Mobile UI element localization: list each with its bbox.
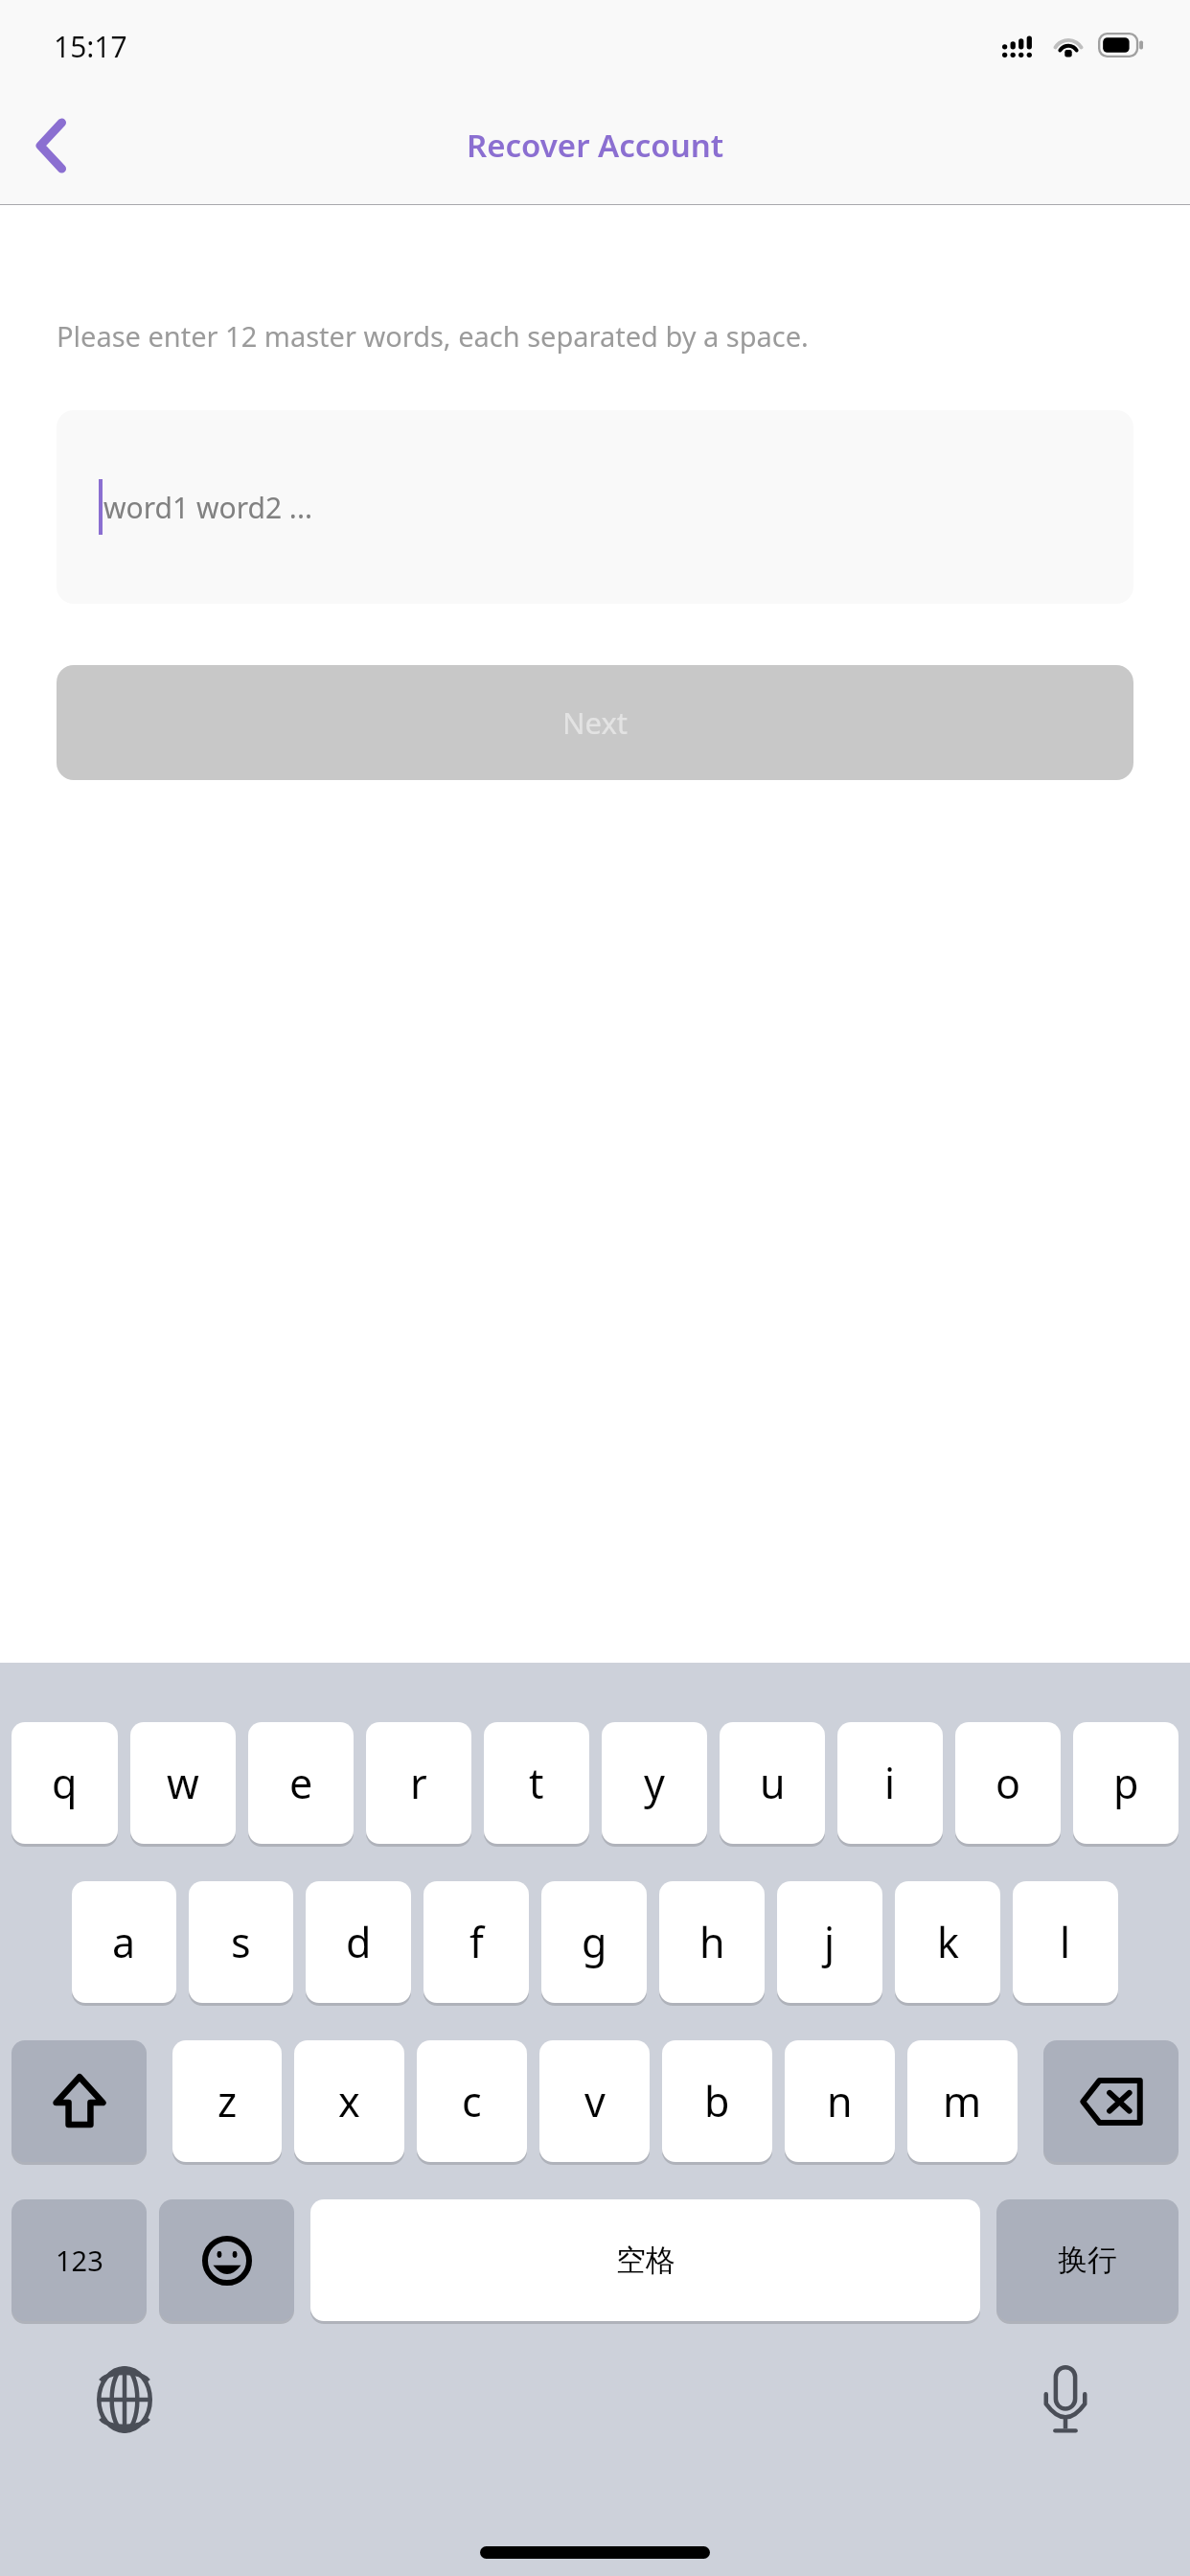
button[interactable] [11,2040,147,2162]
staticText: a [112,1914,136,1970]
staticText: h [699,1914,725,1970]
button[interactable]: 123 [11,2199,147,2321]
button[interactable]: b [662,2040,772,2162]
staticText: Next [562,702,629,743]
other: Shift [11,2040,147,2162]
staticText: c [462,2073,482,2129]
staticText: r [410,1755,427,1811]
button[interactable]: g [541,1881,647,2003]
button[interactable]: m [907,2040,1018,2162]
staticText: m [943,2073,982,2129]
button[interactable]: d [306,1881,411,2003]
staticText: f [469,1914,484,1970]
staticText: t [529,1755,544,1811]
button[interactable]: l [1013,1881,1118,2003]
button[interactable]: n [785,2040,895,2162]
button[interactable]: a [72,1881,176,2003]
button[interactable]: Dictation [1027,2361,1104,2438]
button[interactable]: t [484,1722,589,1844]
button[interactable]: o [955,1722,1061,1844]
staticText: 换行 [1058,2242,1117,2279]
button[interactable]: Change keyboard [86,2361,163,2438]
staticText: x [338,2073,360,2129]
staticText: g [582,1914,607,1970]
staticText: j [824,1914,835,1970]
staticText: Recover Account [467,124,724,167]
staticText: Please enter 12 master words, each separ… [57,317,809,355]
staticText: k [937,1914,959,1970]
staticText: d [346,1914,372,1970]
other: Emoji [159,2199,294,2321]
button[interactable] [1043,2040,1179,2162]
button[interactable]: p [1073,1722,1179,1844]
staticText: v [584,2073,606,2129]
button[interactable]: h [659,1881,765,2003]
staticText: s [231,1914,251,1970]
button[interactable]: q [11,1722,118,1844]
staticText: u [760,1755,786,1811]
staticText: n [827,2073,853,2129]
staticText: 123 [56,2242,103,2279]
button[interactable]: j [777,1881,882,2003]
staticText: q [52,1755,78,1811]
button[interactable]: r [366,1722,471,1844]
button[interactable]: z [172,2040,282,2162]
staticText: b [704,2073,730,2129]
other: Delete [1043,2040,1179,2162]
button[interactable]: c [417,2040,527,2162]
staticText: e [289,1755,313,1811]
staticText: w [167,1755,199,1811]
staticText: l [1060,1914,1071,1970]
staticText: o [995,1755,1021,1811]
staticText: y [644,1755,665,1811]
staticText: z [217,2073,238,2129]
button[interactable]: w [130,1722,236,1844]
staticText: i [884,1755,896,1811]
button[interactable]: x [294,2040,404,2162]
staticText: p [1113,1755,1139,1811]
button[interactable]: u [720,1722,825,1844]
staticText: 15:17 [54,27,127,66]
button[interactable]: k [895,1881,1000,2003]
button[interactable]: s [189,1881,293,2003]
staticText: word1 word2 ... [103,488,312,527]
button[interactable] [159,2199,294,2321]
button[interactable]: i [837,1722,943,1844]
button[interactable]: v [539,2040,650,2162]
button[interactable]: y [602,1722,707,1844]
button[interactable]: 换行 [996,2199,1179,2321]
button[interactable]: word1 word2 ... [57,410,1133,604]
button[interactable]: f [423,1881,529,2003]
button[interactable]: e [248,1722,354,1844]
staticText: 空格 [616,2242,675,2279]
button[interactable]: Next [57,665,1133,780]
button[interactable]: 空格 [310,2199,980,2321]
button[interactable]: Back [0,86,105,204]
